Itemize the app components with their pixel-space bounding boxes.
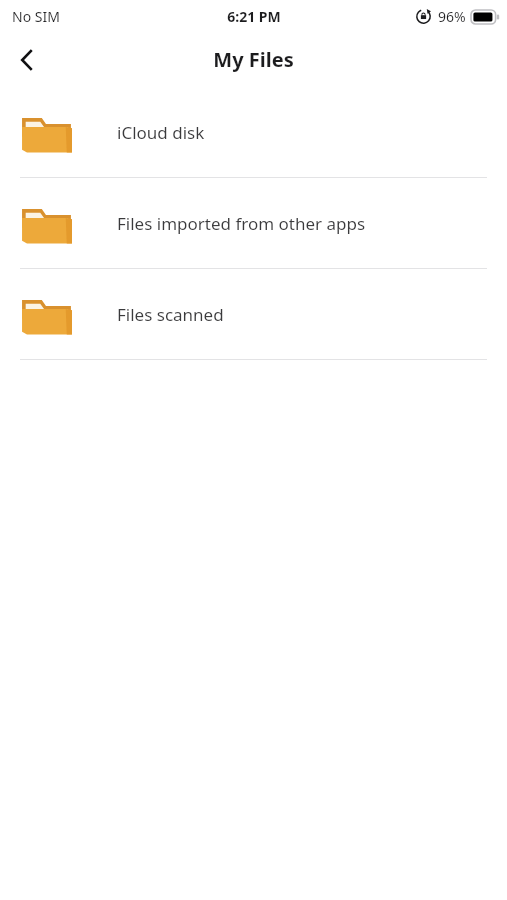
staticText: iCloud disk — [117, 121, 205, 144]
button[interactable]: Back — [0, 33, 54, 87]
staticText: No SIM — [12, 7, 60, 26]
staticText: 96% — [438, 7, 466, 26]
button[interactable]: iCloud disk — [0, 87, 507, 177]
button[interactable]: Files imported from other apps — [0, 178, 507, 268]
staticText: 6:21 PM — [227, 7, 281, 26]
button[interactable]: Files scanned — [0, 269, 507, 359]
staticText: Files scanned — [117, 303, 224, 326]
staticText: Files imported from other apps — [117, 212, 366, 235]
staticText: My Files — [213, 46, 294, 73]
